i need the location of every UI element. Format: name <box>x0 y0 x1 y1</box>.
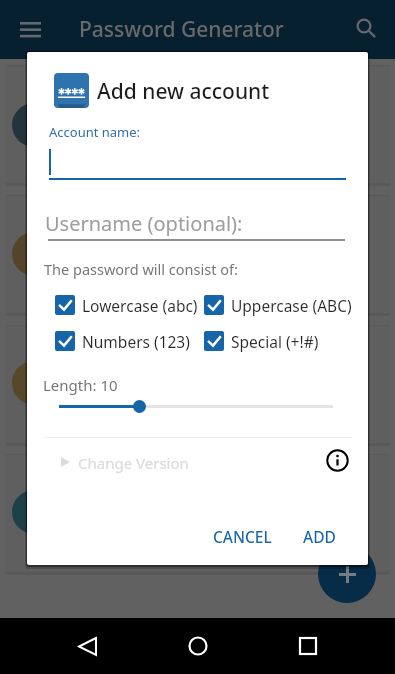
staticText: The password will consist of: <box>44 259 238 279</box>
staticText: Account name: <box>49 123 141 141</box>
staticText: CANCEL <box>213 526 272 547</box>
button[interactable]: ADD <box>294 516 345 556</box>
button[interactable]: CANCEL <box>204 516 281 556</box>
button[interactable]: Info <box>323 446 351 474</box>
staticText: Special (+!#) <box>231 331 319 352</box>
staticText: Uppercase (ABC) <box>231 295 352 316</box>
staticText: Change Version <box>78 453 189 473</box>
staticText: Numbers (123) <box>82 331 190 352</box>
button[interactable]: Numbers (123) <box>55 328 190 354</box>
button[interactable] <box>5 66 390 183</box>
staticText: Add new account <box>97 77 270 106</box>
staticText: Username (optional): <box>45 210 243 237</box>
button[interactable]: Uppercase (ABC) <box>204 292 352 318</box>
button[interactable] <box>5 196 390 313</box>
staticText: ADD <box>303 526 336 547</box>
button[interactable]: Change Version <box>57 450 222 476</box>
button[interactable]: Menu <box>13 12 47 46</box>
button[interactable]: Lowercase (abc) <box>55 292 198 318</box>
button[interactable]: Recents <box>284 622 332 670</box>
staticText: Password Generator <box>79 15 284 44</box>
button[interactable]: Special (+!#) <box>204 328 319 354</box>
button[interactable]: Home <box>174 622 222 670</box>
button[interactable]: Back <box>63 622 111 670</box>
button[interactable] <box>5 326 390 443</box>
button[interactable]: Search <box>350 12 383 45</box>
button[interactable]: Add account <box>318 545 376 603</box>
button[interactable] <box>5 455 390 572</box>
staticText: Lowercase (abc) <box>82 295 198 316</box>
staticText: Length: 10 <box>43 375 118 395</box>
